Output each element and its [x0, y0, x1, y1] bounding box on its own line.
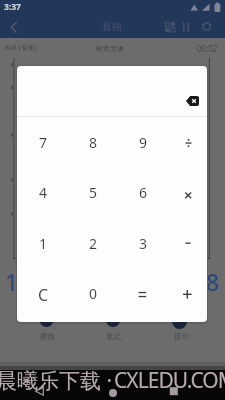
staticText: 1	[39, 234, 48, 253]
staticText: CXLEDU.COM	[114, 366, 225, 395]
button[interactable]	[166, 171, 210, 219]
staticText: 2	[89, 234, 98, 253]
staticText: 擦除	[40, 332, 55, 341]
staticText: 笔记	[106, 332, 121, 341]
button[interactable]	[180, 19, 192, 35]
button[interactable]: 0	[71, 269, 115, 317]
staticText: 3	[139, 234, 148, 253]
button[interactable]: 1	[21, 219, 65, 267]
staticText: 1	[5, 266, 19, 297]
staticText: 8	[206, 266, 220, 297]
button[interactable]: 9	[121, 118, 165, 166]
staticText: 算独	[102, 20, 122, 33]
staticText: 00:02	[197, 43, 218, 54]
button[interactable]	[120, 270, 164, 318]
button[interactable]: 4	[21, 168, 65, 216]
button[interactable]	[101, 381, 125, 400]
button[interactable]	[2, 18, 24, 36]
staticText: 4	[39, 183, 48, 202]
staticText: 9	[139, 133, 148, 152]
button[interactable]	[162, 19, 178, 35]
button[interactable]: C	[21, 271, 65, 319]
button[interactable]: 5	[71, 168, 115, 216]
button[interactable]: 擦除	[12, 324, 82, 348]
button[interactable]	[28, 380, 52, 400]
button[interactable]	[166, 119, 210, 167]
staticText: 5	[89, 183, 98, 202]
staticText: 检查无误	[96, 44, 124, 53]
staticText: 7	[39, 133, 48, 152]
staticText: 6	[139, 183, 148, 202]
button[interactable]	[166, 270, 210, 318]
button[interactable]: 6	[121, 168, 165, 216]
staticText: 3:37	[4, 1, 21, 13]
button[interactable]: 提示	[146, 324, 216, 348]
button[interactable]	[162, 380, 186, 400]
button[interactable]	[198, 18, 215, 35]
staticText: 8	[89, 133, 98, 152]
staticText: 8x8 (专家)	[5, 43, 37, 53]
button[interactable]: 8	[71, 118, 115, 166]
staticText: C	[38, 284, 49, 306]
staticText: 提示	[174, 332, 189, 341]
button[interactable]: 笔记	[78, 324, 148, 348]
button[interactable]: 2	[71, 219, 115, 267]
staticText: 晨曦乐下载 ·	[0, 366, 113, 395]
staticText: 0	[89, 284, 98, 303]
button[interactable]: 3	[121, 219, 165, 267]
button[interactable]: 7	[21, 118, 65, 166]
button[interactable]	[179, 90, 205, 112]
button[interactable]	[166, 221, 210, 269]
